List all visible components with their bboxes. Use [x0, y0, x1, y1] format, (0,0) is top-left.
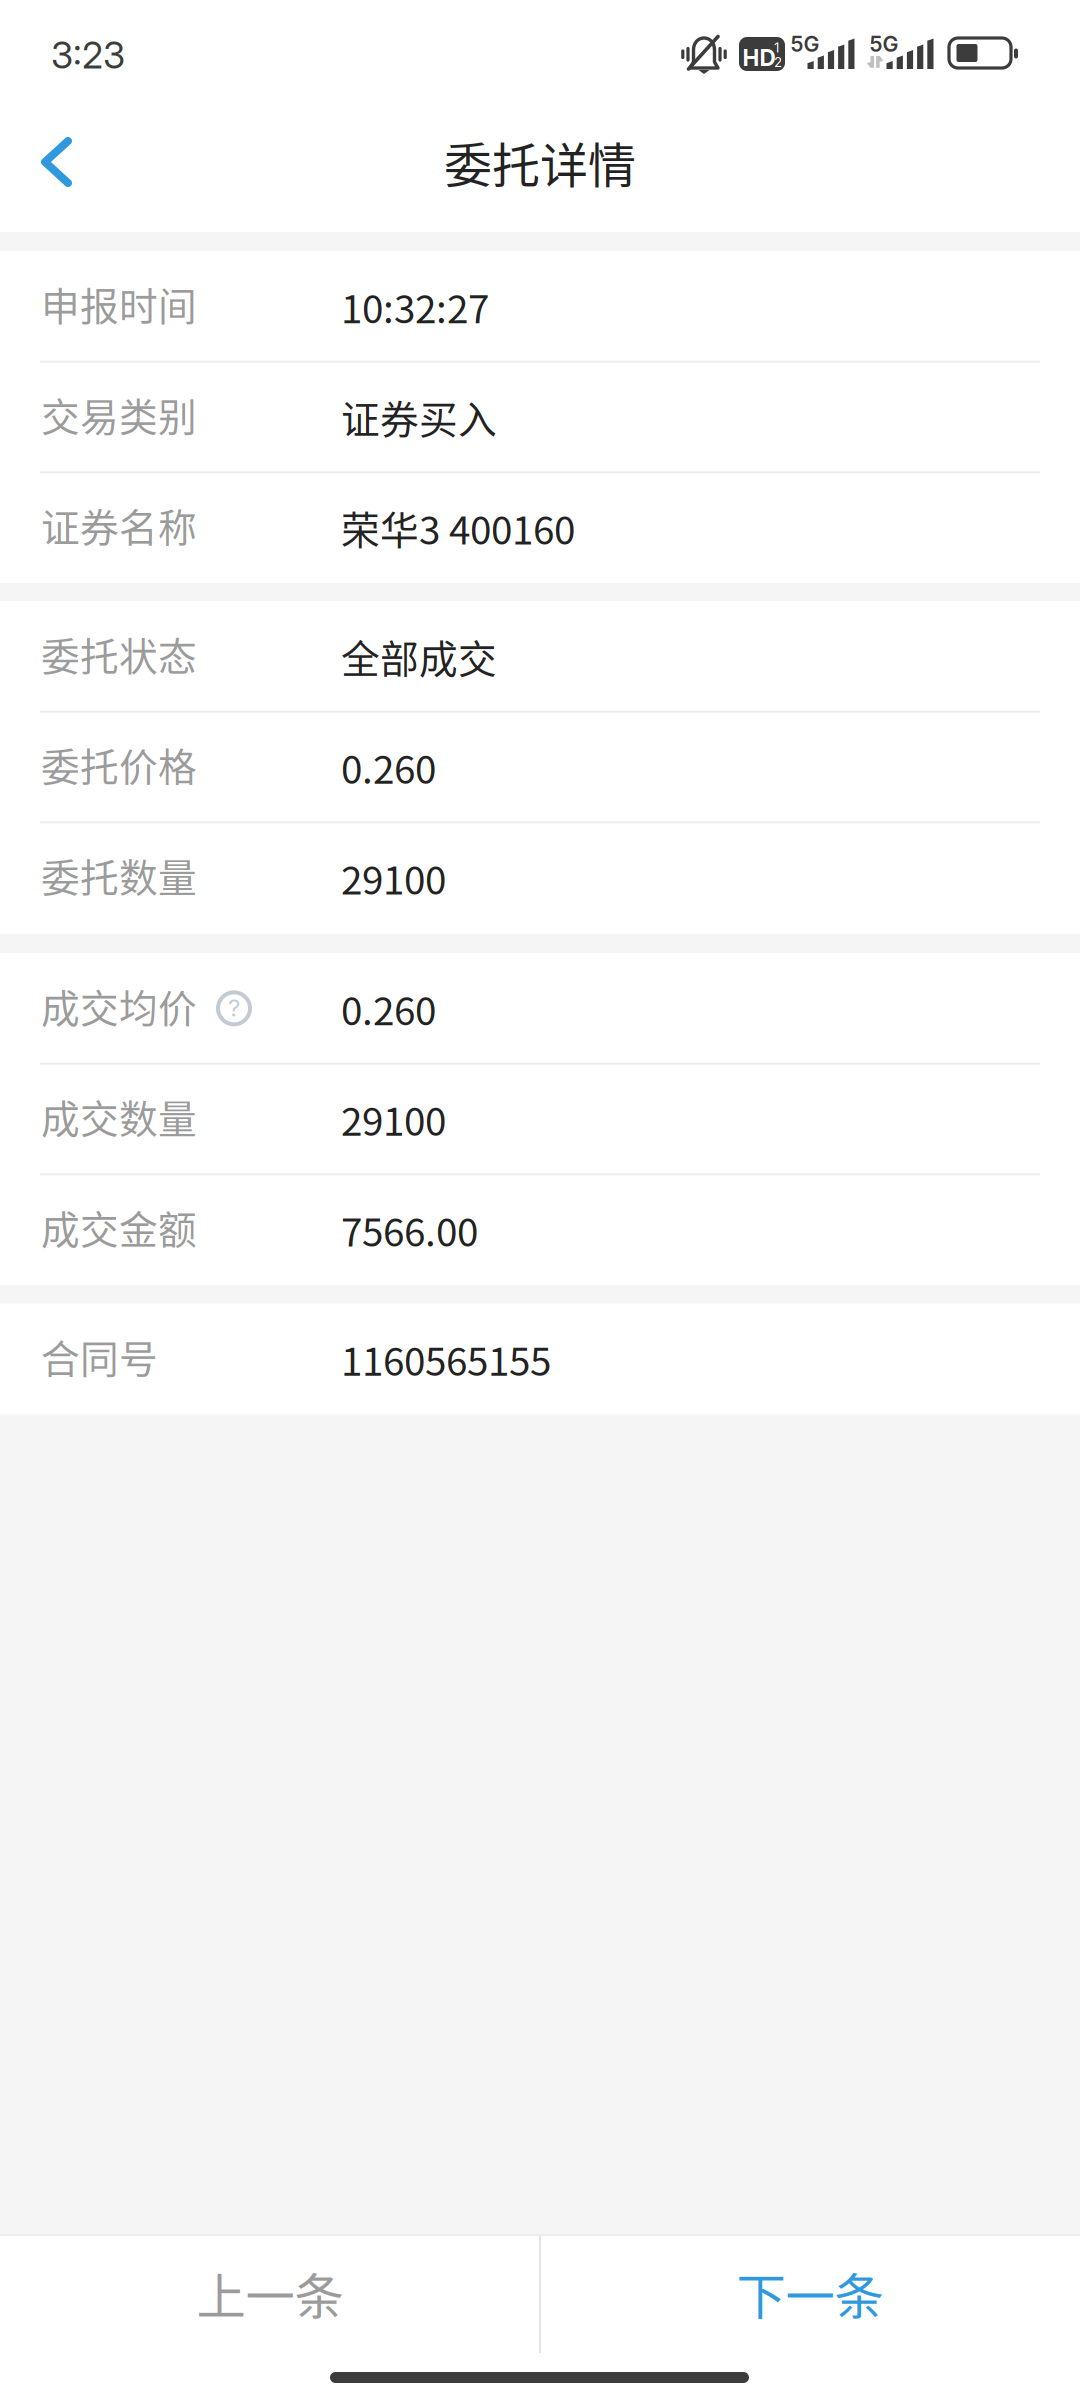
staticText: 交易类别 [41, 386, 197, 442]
staticText: 荣华3 400160 [341, 500, 575, 556]
staticText: 7566.00 [341, 1202, 478, 1258]
staticText: 全部成交 [341, 628, 497, 684]
staticText: 上一条 [196, 2257, 343, 2329]
staticText: 3:23 [51, 33, 125, 77]
staticText: 1160565155 [341, 1331, 551, 1387]
staticText: 5G [790, 31, 819, 57]
staticText: 29100 [341, 1091, 446, 1147]
staticText: 5G [869, 31, 898, 57]
button[interactable]: 下一条 [540, 2236, 1080, 2354]
staticText: 委托价格 [41, 736, 197, 792]
button[interactable]: 成交均价说明 [204, 978, 264, 1038]
staticText: 成交金额 [41, 1199, 197, 1255]
staticText: 29100 [341, 850, 446, 906]
staticText: 2 [774, 54, 782, 70]
staticText: 申报时间 [41, 276, 197, 332]
staticText: 0.260 [341, 980, 436, 1036]
staticText: 成交均价 [41, 978, 197, 1034]
staticText: 1 [774, 39, 779, 56]
staticText: 10:32:27 [341, 278, 489, 334]
staticText: 合同号 [41, 1328, 158, 1384]
button[interactable]: 上一条 [0, 2236, 540, 2354]
staticText: 委托数量 [41, 847, 197, 903]
staticText: 证券名称 [41, 497, 197, 553]
staticText: HD [742, 44, 775, 71]
staticText: 证券买入 [341, 389, 497, 445]
staticText: 委托详情 [444, 127, 636, 197]
staticText: 委托状态 [41, 626, 197, 682]
staticText: 成交数量 [41, 1088, 197, 1144]
staticText: 下一条 [736, 2257, 883, 2329]
button[interactable]: 返回 [0, 110, 112, 232]
staticText: 0.260 [341, 739, 436, 795]
staticText: ? [228, 993, 240, 1022]
